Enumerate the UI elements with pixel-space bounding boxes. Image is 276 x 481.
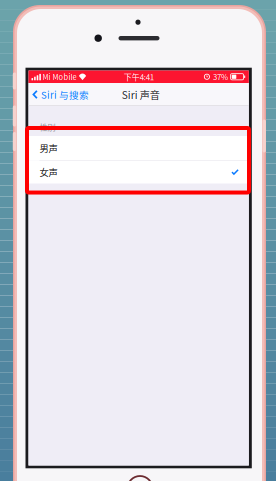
staticText: Siri 声音 (122, 87, 160, 102)
staticText: 女声 (39, 165, 57, 179)
button[interactable]: 男声 (28, 136, 249, 160)
staticText: Mi Mobile (42, 71, 76, 82)
button[interactable]: 女声 (28, 160, 249, 183)
staticText: 男声 (39, 141, 57, 155)
staticText: 性别 (39, 121, 55, 133)
staticText: 37% (213, 71, 228, 82)
staticText: 下午4:41 (124, 71, 154, 83)
staticText: Siri 与搜索 (41, 87, 89, 101)
button[interactable]: Siri 与搜索 (28, 81, 92, 107)
